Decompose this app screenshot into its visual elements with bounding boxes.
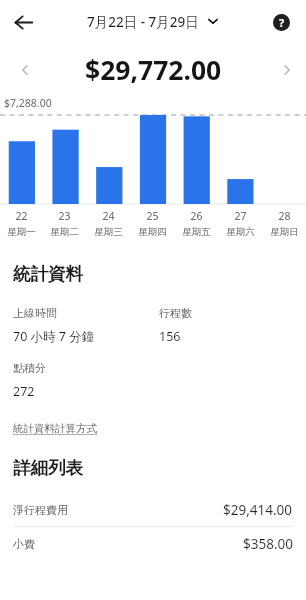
staticText: 23 [58, 209, 71, 223]
staticText: 星期日 [270, 226, 299, 238]
staticText: 詳細列表 [13, 457, 83, 479]
staticText: 統計資料 [13, 263, 83, 285]
staticText: 70 小時 7 分鐘 [13, 328, 95, 345]
staticText: 星期三 [94, 226, 123, 238]
staticText: 小費 [13, 537, 35, 551]
staticText: 統計資料計算方式 [13, 422, 97, 435]
button[interactable]: 7月22日 - 7月29日 [81, 9, 225, 35]
staticText: 點積分 [13, 361, 46, 375]
staticText: $29,772.00 [85, 52, 222, 88]
staticText: 星期一 [7, 226, 36, 238]
button[interactable]: Help [267, 8, 295, 36]
staticText: $358.00 [243, 535, 293, 553]
staticText: 淨行程費用 [13, 503, 68, 517]
button[interactable]: 統計資料計算方式 [13, 420, 97, 437]
staticText: 22 [15, 209, 28, 223]
staticText: 27 [234, 209, 247, 223]
button[interactable]: 小費 [0, 527, 306, 560]
staticText: $7,288.00 [4, 96, 52, 110]
button[interactable]: 淨行程費用 [0, 493, 306, 526]
staticText: 272 [13, 383, 35, 400]
staticText: $29,414.00 [223, 501, 293, 519]
staticText: 星期五 [182, 226, 211, 238]
staticText: 星期六 [226, 226, 255, 238]
staticText: 26 [190, 209, 203, 223]
staticText: 156 [159, 328, 181, 345]
staticText: 28 [278, 209, 291, 223]
staticText: 7月22日 - 7月29日 [87, 13, 199, 31]
button[interactable]: Back [7, 6, 39, 38]
staticText: 星期四 [138, 226, 167, 238]
staticText: ? [279, 15, 285, 30]
button[interactable]: Next week [275, 58, 299, 82]
staticText: 上線時間 [13, 306, 57, 320]
staticText: 行程數 [159, 306, 192, 320]
staticText: 25 [146, 209, 159, 223]
staticText: 星期二 [50, 226, 79, 238]
button[interactable]: Previous week [13, 58, 37, 82]
staticText: 24 [102, 209, 115, 223]
